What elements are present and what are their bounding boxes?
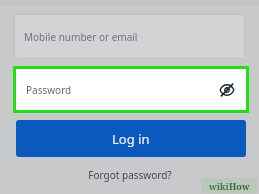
button[interactable]: Forgot password? — [88, 168, 172, 182]
button[interactable]: Mobile number or email — [14, 14, 245, 59]
staticText: How — [229, 180, 250, 192]
staticText: Mobile number or email — [24, 30, 138, 44]
button[interactable]: Log in — [16, 120, 246, 157]
staticText: Forgot password? — [88, 168, 172, 182]
button[interactable]: Password — [16, 69, 246, 110]
staticText: Password — [26, 83, 72, 97]
button[interactable]: Show password — [216, 79, 238, 101]
staticText: wiki — [209, 180, 229, 192]
staticText: Log in — [112, 130, 150, 148]
